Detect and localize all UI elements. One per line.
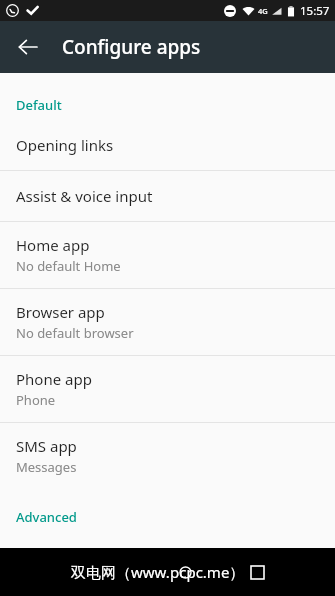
button[interactable]: Phone app (0, 356, 335, 422)
staticText: 双电网（www. (71, 562, 170, 582)
button[interactable]: Recents (251, 566, 264, 579)
staticText: Advanced (16, 508, 77, 526)
staticText: No default browser (16, 324, 134, 342)
staticText: Phone app (16, 369, 92, 389)
button[interactable]: Home app (0, 222, 335, 288)
staticText: Assist & voice input (16, 186, 153, 206)
staticText: 4G (258, 6, 268, 16)
staticText: Browser app (16, 302, 105, 322)
staticText: Configure apps (62, 34, 201, 60)
staticText: No default Home (16, 257, 121, 275)
button[interactable]: Opening links (0, 120, 335, 170)
staticText: Home app (16, 235, 90, 255)
button[interactable]: SMS app (0, 423, 335, 489)
button[interactable]: Browser app (0, 289, 335, 355)
staticText: Messages (16, 458, 77, 476)
staticText: Opening links (16, 135, 114, 155)
staticText: SMS app (16, 436, 77, 456)
staticText: pcpc.me） (170, 562, 245, 582)
staticText: Phone (16, 391, 56, 409)
button[interactable]: Back (8, 27, 48, 67)
staticText: Default (16, 96, 62, 114)
button[interactable]: Assist & voice input (0, 171, 335, 221)
staticText: 15:57 (300, 3, 330, 19)
